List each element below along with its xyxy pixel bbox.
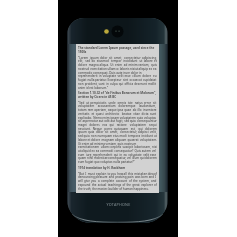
other: Front camera bbox=[111, 25, 124, 38]
button[interactable]: YotaPhone device bbox=[67, 18, 168, 223]
staticText: YOTAPHONE bbox=[98, 202, 139, 207]
button[interactable] bbox=[76, 44, 159, 193]
